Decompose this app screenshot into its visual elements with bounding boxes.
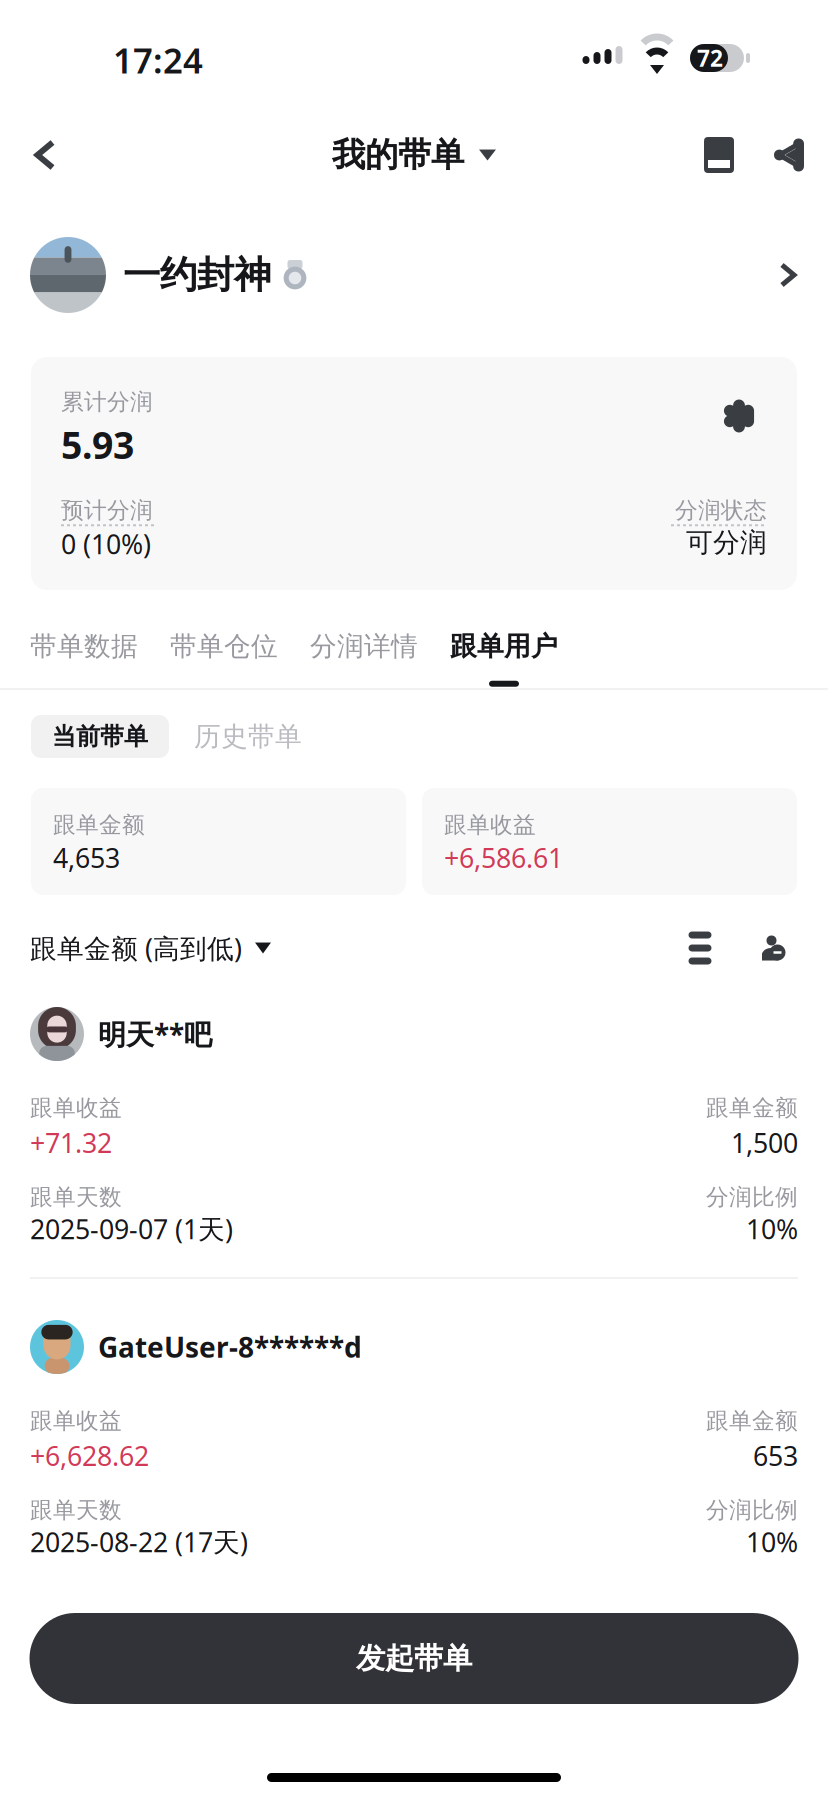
button[interactable]: Share [750, 110, 828, 200]
button[interactable]: 发起带单 [29, 1613, 798, 1704]
staticText: 72 [697, 43, 723, 73]
staticText: 跟单收益 [444, 811, 536, 839]
button[interactable]: 跟单金额 (高到低) [30, 915, 271, 981]
staticText: 分润比例 [706, 1183, 798, 1211]
staticText: 分润详情 [310, 630, 418, 663]
staticText: 跟单金额 [53, 811, 145, 839]
button[interactable]: Settings [711, 388, 767, 444]
button[interactable]: 分润详情 [294, 590, 434, 690]
button[interactable]: 历史带单 [169, 715, 327, 758]
staticText: 653 [753, 1438, 798, 1473]
button[interactable]: 明天**吧 [0, 981, 828, 1277]
button[interactable]: 一约封神 [0, 200, 828, 350]
button[interactable]: 跟单用户 [434, 590, 574, 690]
staticText: 预计分润 [61, 496, 153, 524]
staticText: 分润状态 [675, 496, 767, 524]
button[interactable]: Back [0, 110, 90, 200]
staticText: 跟单天数 [30, 1183, 122, 1211]
staticText: 17:24 [113, 37, 203, 83]
staticText: 5.93 [61, 420, 134, 469]
staticText: 跟单收益 [30, 1407, 122, 1435]
button[interactable]: 当前带单 [31, 715, 169, 758]
staticText: 分润比例 [706, 1496, 798, 1524]
staticText: 带单数据 [30, 630, 138, 663]
staticText: 可分润 [686, 526, 767, 559]
staticText: +6,586.61 [444, 840, 563, 875]
staticText: 2025-08-22 (17天) [30, 1524, 248, 1559]
staticText: GateUser-8******d [98, 1328, 362, 1366]
button[interactable]: List view [672, 915, 728, 981]
button[interactable]: 带单仓位 [154, 590, 294, 690]
staticText: 我的带单 [332, 134, 464, 175]
staticText: 1,500 [731, 1125, 798, 1160]
staticText: 跟单用户 [450, 630, 558, 663]
staticText: 明天**吧 [98, 1015, 212, 1053]
staticText: 跟单天数 [30, 1496, 122, 1524]
staticText: 2025-09-07 (1天) [30, 1211, 233, 1246]
staticText: 当前带单 [52, 722, 148, 751]
staticText: 一约封神 [123, 252, 271, 298]
staticText: 4,653 [53, 840, 120, 875]
staticText: 跟单金额 (高到低) [30, 930, 242, 966]
staticText: +71.32 [30, 1125, 112, 1160]
button[interactable]: Notes [688, 110, 750, 200]
button[interactable]: GateUser-8******d [0, 1279, 828, 1564]
staticText: 跟单收益 [30, 1094, 122, 1122]
button[interactable]: 我的带单 [332, 110, 496, 200]
staticText: 累计分润 [61, 388, 153, 416]
staticText: 0 (10%) [61, 526, 151, 562]
staticText: 发起带单 [356, 1640, 472, 1676]
staticText: 历史带单 [194, 720, 302, 753]
staticText: 10% [746, 1211, 798, 1246]
staticText: 带单仓位 [170, 630, 278, 663]
staticText: +6,628.62 [30, 1438, 149, 1473]
staticText: 10% [746, 1524, 798, 1559]
staticText: 跟单金额 [706, 1407, 798, 1435]
button[interactable]: Remove follower [750, 915, 796, 981]
button[interactable]: 带单数据 [14, 590, 154, 690]
staticText: 跟单金额 [706, 1094, 798, 1122]
